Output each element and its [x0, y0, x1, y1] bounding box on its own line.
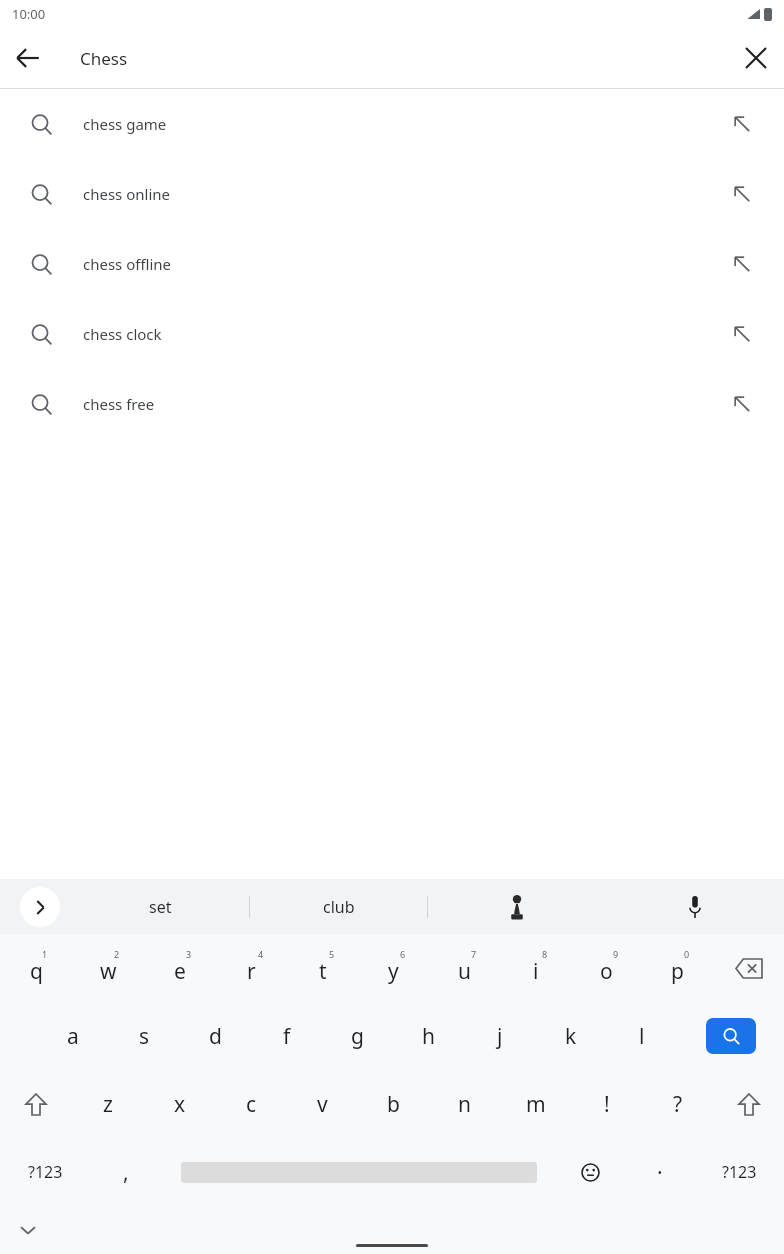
staticText: r [247, 957, 256, 986]
button[interactable]: l [606, 1002, 677, 1070]
staticText: d [209, 1022, 222, 1051]
button[interactable]: ?123 [694, 1138, 784, 1206]
button[interactable]: Hide keyboard [12, 1214, 44, 1246]
staticText: 5 [329, 948, 335, 960]
button[interactable]: chess clock [0, 299, 784, 369]
button[interactable]: n [429, 1070, 500, 1138]
staticText: x [174, 1090, 186, 1119]
staticText: 4 [258, 948, 264, 960]
button[interactable]: chess offline [0, 229, 784, 299]
button[interactable]: club [250, 879, 427, 934]
button[interactable]: g [322, 1002, 393, 1070]
button[interactable]: h [393, 1002, 464, 1070]
staticText: ? [673, 1090, 683, 1119]
button[interactable]: Insert chess online [700, 159, 784, 229]
staticText: c [246, 1090, 257, 1119]
staticText: ?123 [722, 1161, 757, 1183]
staticText: 3 [186, 948, 192, 960]
button[interactable]: 7 [429, 934, 500, 1002]
staticText: h [422, 1022, 435, 1051]
button[interactable]: 3 [144, 934, 216, 1002]
button[interactable]: 2 [72, 934, 144, 1002]
button[interactable]: 6 [358, 934, 429, 1002]
button[interactable]: ?123 [0, 1138, 91, 1206]
staticText: g [351, 1022, 364, 1051]
button[interactable]: Insert chess game [700, 89, 784, 159]
button[interactable]: a [37, 1002, 109, 1070]
staticText: chess free [83, 394, 700, 414]
button[interactable]: k [535, 1002, 606, 1070]
button[interactable]: d [180, 1002, 251, 1070]
button[interactable]: Clear [728, 30, 784, 86]
button[interactable]: Emoji [556, 1138, 625, 1206]
button[interactable]: x [144, 1070, 216, 1138]
button[interactable]: Insert chess offline [700, 229, 784, 299]
button[interactable]: f [251, 1002, 322, 1070]
staticText: ! [604, 1090, 610, 1119]
staticText: v [317, 1090, 328, 1119]
staticText: chess clock [83, 324, 700, 344]
button[interactable]: Search [677, 1002, 784, 1070]
staticText: n [458, 1090, 471, 1119]
button[interactable]: 0 [642, 934, 713, 1002]
staticText: u [458, 957, 471, 986]
staticText: y [388, 957, 399, 986]
staticText: chess offline [83, 254, 700, 274]
staticText: e [174, 957, 186, 986]
button[interactable]: chess online [0, 159, 784, 229]
button[interactable]: Insert chess clock [700, 299, 784, 369]
staticText: i [533, 957, 539, 986]
staticText: 7 [471, 948, 477, 960]
staticText: Chess [80, 47, 728, 70]
button[interactable]: 4 [216, 934, 287, 1002]
button[interactable]: 9 [571, 934, 642, 1002]
button[interactable]: Space [161, 1138, 556, 1206]
staticText: 10:00 [12, 5, 46, 23]
staticText: chess game [83, 114, 700, 134]
staticText: m [526, 1090, 546, 1119]
staticText: k [565, 1022, 577, 1051]
staticText: b [387, 1090, 400, 1119]
button[interactable]: j [464, 1002, 535, 1070]
staticText: chess online [83, 184, 700, 204]
button[interactable]: Voice input [606, 879, 784, 934]
staticText: j [497, 1022, 503, 1051]
staticText: a [67, 1022, 79, 1051]
button[interactable]: s [109, 1002, 180, 1070]
staticText: o [600, 957, 613, 986]
button[interactable]: Shift [0, 1070, 72, 1138]
staticText: 8 [542, 948, 548, 960]
button[interactable]: ! [571, 1070, 642, 1138]
button[interactable]: z [72, 1070, 144, 1138]
staticText: s [139, 1022, 150, 1051]
staticText: l [639, 1022, 645, 1051]
button[interactable]: Insert chess free [700, 369, 784, 439]
button[interactable]: ? [642, 1070, 713, 1138]
button[interactable]: Backspace [713, 934, 784, 1002]
button[interactable]: v [287, 1070, 358, 1138]
button[interactable]: set [72, 879, 249, 934]
button[interactable]: b [358, 1070, 429, 1138]
button[interactable]: Chess emoji [428, 879, 606, 934]
button[interactable]: Shift [713, 1070, 784, 1138]
staticText: z [103, 1090, 113, 1119]
staticText: 9 [613, 948, 619, 960]
staticText: 6 [400, 948, 406, 960]
button[interactable]: c [216, 1070, 287, 1138]
button[interactable]: More suggestions [20, 887, 60, 927]
button[interactable]: chess free [0, 369, 784, 439]
button[interactable]: 1 [0, 934, 72, 1002]
staticText: 2 [114, 948, 120, 960]
button[interactable]: m [500, 1070, 571, 1138]
button[interactable]: 8 [500, 934, 571, 1002]
button[interactable]: Back [0, 30, 56, 86]
button[interactable]: chess game [0, 89, 784, 159]
staticText: f [283, 1022, 291, 1051]
staticText: ?123 [28, 1161, 63, 1183]
button[interactable]: · [625, 1138, 694, 1206]
button[interactable]: , [91, 1138, 161, 1206]
button[interactable]: 5 [287, 934, 358, 1002]
staticText: q [30, 957, 43, 986]
staticText: w [100, 957, 117, 986]
staticText: p [671, 957, 684, 986]
